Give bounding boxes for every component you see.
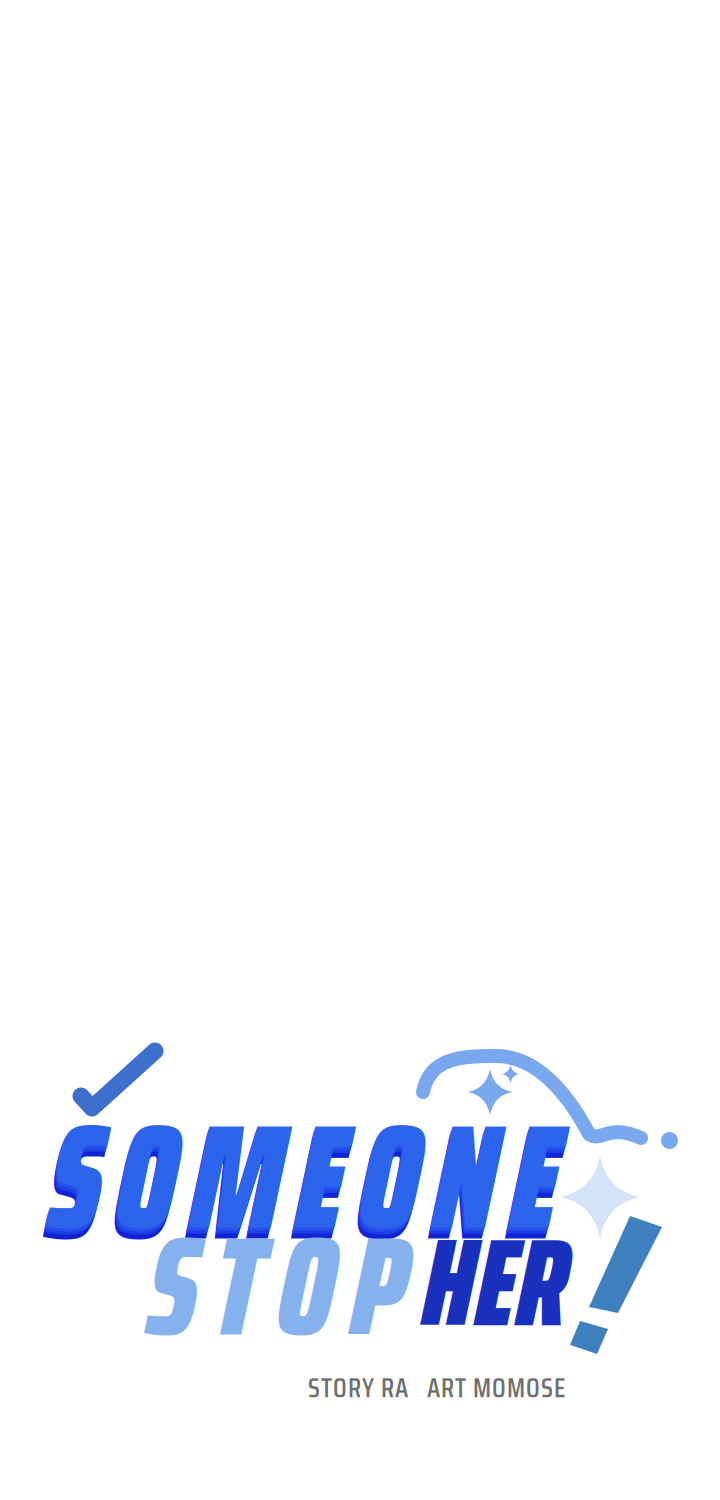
staticText: SOMEONE bbox=[47, 1067, 558, 1298]
staticText: STOP bbox=[147, 1177, 406, 1395]
staticText: SOMEONE bbox=[46, 1072, 557, 1303]
staticText: HER bbox=[422, 1186, 567, 1379]
staticText: SOMEONE bbox=[49, 1061, 560, 1292]
staticText: SOMEONE bbox=[48, 1064, 559, 1295]
staticText: STORY RA ART MOMOSE bbox=[308, 1367, 565, 1409]
